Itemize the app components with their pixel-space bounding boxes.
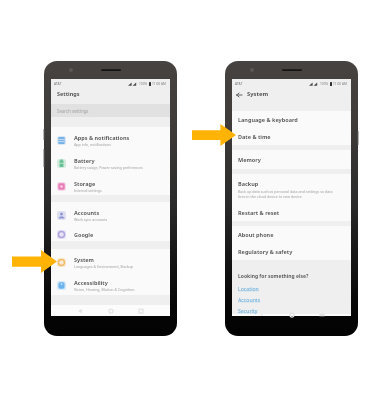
staticText: App info, notifications: [74, 142, 111, 147]
staticText: Date & time: [238, 133, 271, 140]
staticText: Google: [74, 231, 94, 238]
staticText: 11:00 AM: [333, 82, 347, 86]
button[interactable]: Home: [286, 314, 298, 316]
staticText: Security: [238, 307, 258, 314]
button[interactable]: Date & time: [232, 128, 351, 145]
staticText: Settings: [57, 90, 80, 97]
button[interactable]: Backup: [232, 174, 351, 204]
button[interactable]: Back: [232, 89, 351, 106]
staticText: Memory: [238, 156, 261, 163]
button[interactable]: Back: [74, 305, 86, 316]
button[interactable]: Battery: [51, 150, 170, 173]
button[interactable]: Home: [105, 305, 117, 316]
button[interactable]: Language & keyboard: [232, 111, 351, 128]
button[interactable]: Accounts: [238, 296, 261, 303]
button[interactable]: Regulatory & safety: [232, 243, 351, 260]
staticText: Languages & Environment, Backup: [74, 264, 134, 269]
button[interactable]: Security: [238, 307, 258, 314]
staticText: About phone: [238, 231, 274, 238]
staticText: AT&T: [54, 82, 62, 86]
staticText: Battery usage, Power saving preferences: [74, 165, 143, 170]
staticText: Looking for something else?: [238, 273, 309, 280]
staticText: Apps & notifications: [74, 134, 130, 141]
staticText: Search settings: [57, 108, 89, 114]
other: Back: [236, 92, 242, 98]
button[interactable]: System: [51, 249, 170, 272]
button[interactable]: Accessibility: [51, 272, 170, 295]
staticText: Backup: [238, 180, 259, 187]
button[interactable]: Recents: [316, 314, 328, 316]
staticText: Restart & reset: [238, 209, 280, 216]
button[interactable]: Search settings: [51, 104, 170, 117]
button[interactable]: Recents: [135, 305, 147, 316]
staticText: Language & keyboard: [238, 116, 298, 123]
staticText: Accessibility: [74, 279, 108, 286]
staticText: 100%: [139, 82, 148, 86]
staticText: Back up data such as personal data and s…: [238, 189, 333, 199]
button[interactable]: Back: [255, 314, 267, 316]
staticText: System: [74, 256, 94, 263]
button[interactable]: Accounts: [51, 202, 170, 224]
staticText: Work sync accounts: [74, 217, 108, 222]
button[interactable]: Restart & reset: [232, 204, 351, 221]
staticText: Internal settings: [74, 188, 102, 193]
staticText: Regulatory & safety: [238, 248, 293, 255]
staticText: System: [247, 90, 269, 98]
staticText: Vision, Hearing, Motion & Cognition: [74, 287, 135, 292]
button[interactable]: Location: [238, 285, 259, 292]
staticText: Battery: [74, 157, 95, 164]
button[interactable]: About phone: [232, 226, 351, 243]
staticText: AT&T: [235, 82, 243, 86]
staticText: Accounts: [238, 296, 261, 303]
staticText: Accounts: [74, 209, 100, 216]
button[interactable]: Storage: [51, 173, 170, 195]
staticText: 11:00 AM: [152, 82, 166, 86]
staticText: Location: [238, 285, 259, 292]
button[interactable]: Apps & notifications: [51, 127, 170, 150]
staticText: Storage: [74, 180, 96, 187]
button[interactable]: Google: [51, 224, 170, 241]
button[interactable]: Memory: [232, 150, 351, 169]
staticText: 100%: [320, 82, 329, 86]
